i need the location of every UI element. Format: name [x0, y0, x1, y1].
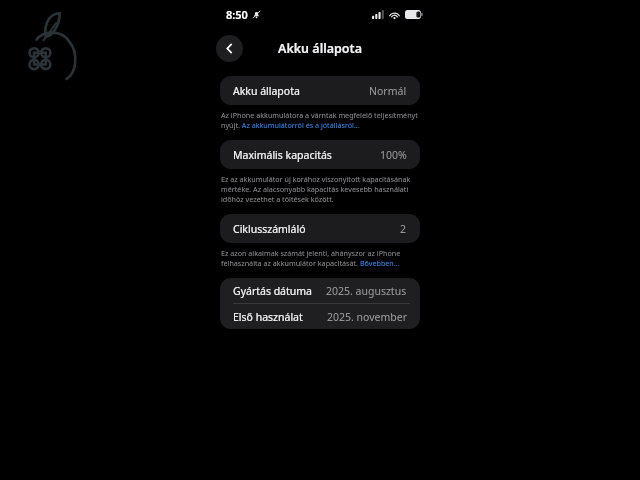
staticText: 2025. november — [327, 310, 407, 324]
staticText: 2 — [400, 222, 407, 236]
button[interactable]: Ciklusszámláló — [220, 214, 420, 243]
staticText: Akku állapota — [278, 40, 362, 57]
staticText: Gyártás dátuma — [233, 284, 313, 298]
staticText: Ez azon alkalmak számát jelenti, ahánysz… — [221, 248, 418, 268]
staticText: Az iPhone akkumulátora a várntak megfele… — [221, 110, 418, 130]
button[interactable]: Gyártás dátuma — [220, 278, 420, 303]
staticText: Maximális kapacitás — [233, 148, 332, 162]
staticText: Ez az akkumulátor új korához viszonyítot… — [221, 174, 418, 204]
button[interactable]: Első használat — [220, 304, 420, 329]
button[interactable]: Akku állapota — [220, 76, 420, 105]
staticText: 8:50 — [226, 7, 248, 22]
button[interactable]: Back — [216, 35, 243, 62]
staticText: Ciklusszámláló — [233, 222, 306, 236]
staticText: Első használat — [233, 310, 303, 324]
staticText: 100% — [380, 148, 407, 162]
staticText: Akku állapota — [233, 84, 300, 98]
button[interactable]: Maximális kapacitás — [220, 140, 420, 169]
staticText: 2025. augusztus — [326, 284, 407, 298]
staticText: Normál — [369, 84, 407, 98]
